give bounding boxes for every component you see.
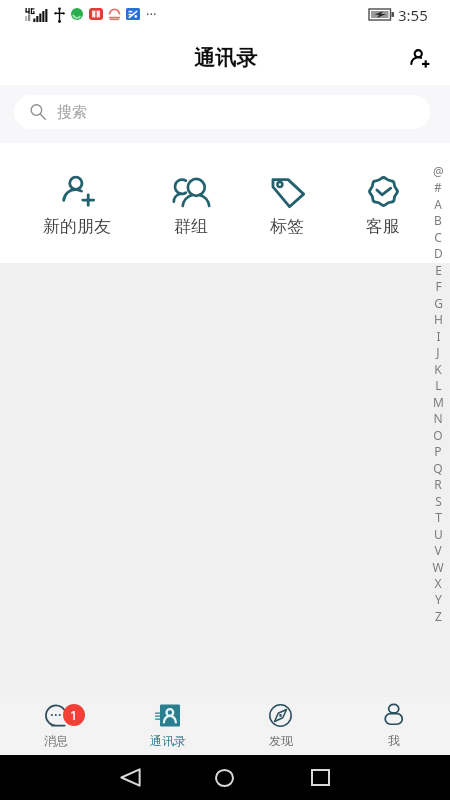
button[interactable]: Home [200, 755, 248, 800]
button[interactable]: 发现 [224, 697, 337, 755]
button[interactable]: M [427, 393, 449, 410]
staticText: K [434, 361, 442, 377]
staticText: C [434, 229, 442, 245]
staticText: V [434, 542, 442, 558]
button[interactable]: 新的朋友 [34, 175, 120, 237]
staticText: Q [433, 460, 443, 476]
button[interactable]: Add contact [398, 37, 440, 79]
staticText: 我 [388, 733, 400, 748]
button[interactable]: K [427, 360, 449, 377]
staticText: G [434, 295, 443, 311]
button[interactable]: I [427, 327, 449, 344]
button[interactable]: N [427, 409, 449, 426]
staticText: 1 [70, 706, 78, 724]
button[interactable]: J [427, 343, 449, 360]
staticText: Y [435, 591, 442, 607]
staticText: 标签 [270, 216, 304, 237]
button[interactable]: H [427, 310, 449, 327]
staticText: # [434, 179, 442, 195]
button[interactable]: A [427, 195, 449, 212]
staticText: B [434, 212, 442, 228]
staticText: M [433, 394, 444, 410]
button[interactable]: Q [427, 459, 449, 476]
staticText: T [435, 509, 442, 525]
button[interactable]: O [427, 426, 449, 443]
button[interactable]: 1 [0, 697, 112, 755]
button[interactable]: U [427, 525, 449, 542]
staticText: ··· [146, 5, 157, 23]
staticText: L [435, 377, 442, 393]
button[interactable]: # [427, 178, 449, 195]
button[interactable]: Z [427, 607, 449, 624]
button[interactable]: 群组 [148, 175, 234, 237]
button[interactable]: Y [427, 590, 449, 607]
staticText: O [433, 427, 443, 443]
staticText: D [434, 245, 443, 261]
staticText: J [436, 344, 440, 360]
staticText: I [436, 328, 441, 344]
staticText: W [432, 559, 444, 575]
staticText: 通讯录 [194, 45, 257, 71]
staticText: N [433, 410, 443, 426]
button[interactable]: X [427, 574, 449, 591]
staticText: P [434, 443, 442, 459]
button[interactable]: 搜索 [14, 95, 430, 129]
button[interactable]: 我 [337, 697, 450, 755]
staticText: U [434, 526, 443, 542]
staticText: Z [435, 608, 442, 624]
button[interactable]: 通讯录 [112, 697, 224, 755]
button[interactable]: D [427, 244, 449, 261]
staticText: 消息 [44, 733, 68, 748]
button[interactable]: P [427, 442, 449, 459]
button[interactable]: F [427, 277, 449, 294]
staticText: 新的朋友 [43, 216, 111, 237]
button[interactable]: W [427, 558, 449, 575]
staticText: S [435, 493, 442, 509]
staticText: E [435, 262, 442, 278]
button[interactable]: S [427, 492, 449, 509]
button[interactable]: G [427, 294, 449, 311]
button[interactable]: @ [427, 162, 449, 179]
staticText: 客服 [366, 216, 400, 237]
button[interactable]: T [427, 508, 449, 525]
button[interactable]: L [427, 376, 449, 393]
button[interactable]: B [427, 211, 449, 228]
button[interactable]: 客服 [340, 175, 426, 237]
staticText: R [434, 476, 442, 492]
staticText: 搜索 [57, 103, 87, 122]
button[interactable]: Back [106, 755, 154, 800]
staticText: @ [433, 163, 444, 179]
staticText: F [435, 278, 442, 294]
staticText: A [434, 196, 442, 212]
staticText: 3:55 [398, 5, 428, 25]
staticText: H [434, 311, 443, 327]
button[interactable]: C [427, 228, 449, 245]
button[interactable]: R [427, 475, 449, 492]
button[interactable]: V [427, 541, 449, 558]
staticText: 发现 [269, 733, 293, 748]
staticText: 群组 [174, 216, 208, 237]
button[interactable]: Recent apps [296, 755, 344, 800]
staticText: 通讯录 [150, 733, 186, 748]
button[interactable]: E [427, 261, 449, 278]
button[interactable]: 标签 [244, 175, 330, 237]
staticText: X [434, 575, 442, 591]
